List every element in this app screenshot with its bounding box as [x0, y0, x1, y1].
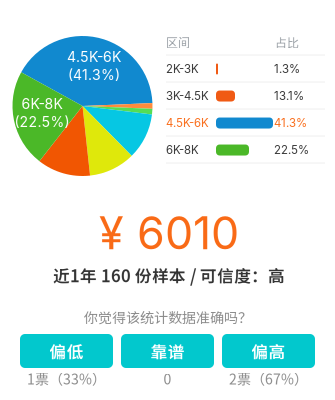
staticText: 22.5%: [274, 143, 309, 157]
staticText: 占比: [275, 33, 299, 51]
staticText: ¥ 6010: [99, 206, 239, 260]
staticText: 偏低: [49, 339, 83, 363]
staticText: 2票（67%）: [229, 368, 308, 389]
staticText: 13.1%: [274, 89, 304, 103]
button[interactable]: 偏低: [20, 334, 113, 368]
staticText: 偏高: [251, 339, 285, 363]
staticText: 6K-8K: [166, 143, 199, 157]
staticText: 靠谱: [150, 339, 184, 363]
staticText: 区间: [166, 33, 190, 51]
staticText: 4.5K-6K: [166, 116, 209, 130]
staticText: 6K-8K: [21, 96, 62, 112]
button[interactable]: 偏高: [222, 334, 315, 368]
button[interactable]: 靠谱: [121, 334, 214, 368]
staticText: 2K-3K: [166, 62, 199, 76]
staticText: 41.3%: [274, 116, 307, 130]
staticText: 3K-4.5K: [166, 89, 209, 103]
staticText: 1.3%: [274, 62, 300, 76]
staticText: 你觉得该统计数据准确吗？: [84, 307, 252, 327]
staticText: 1票（33%）: [27, 368, 106, 389]
staticText: (22.5%): [14, 113, 69, 130]
staticText: 0: [163, 368, 171, 389]
staticText: (41.3%): [68, 66, 120, 83]
staticText: 近1年 160 份样本 / 可信度：高: [53, 263, 285, 287]
staticText: 4.5K-6K: [67, 49, 121, 65]
